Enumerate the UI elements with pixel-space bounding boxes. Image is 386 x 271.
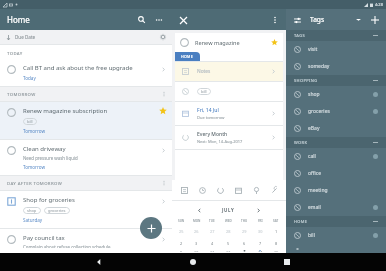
button[interactable]: bill [175, 82, 283, 101]
button[interactable]: DAY AFTER TOMORROW [0, 176, 172, 190]
button[interactable]: Close [177, 14, 189, 26]
button[interactable]: bill [286, 227, 386, 244]
staticText: Renew magazine subscription [195, 39, 271, 47]
button[interactable]: Add task [140, 217, 162, 239]
button[interactable]: Call BT and ask about the free upgrade [0, 59, 172, 86]
button[interactable]: HOME [175, 52, 200, 61]
button[interactable]: 30 [252, 226, 268, 236]
button[interactable]: More options [269, 14, 281, 26]
button[interactable]: 28 [220, 226, 236, 236]
button[interactable]: Home [186, 255, 200, 269]
button[interactable]: TOMORROW [0, 87, 172, 101]
button[interactable]: 7 [252, 238, 268, 248]
button[interactable]: Search [135, 13, 148, 26]
button[interactable]: bill [197, 88, 211, 95]
staticText: bill [308, 232, 373, 239]
button[interactable]: email [286, 199, 386, 216]
staticText: call [308, 153, 373, 160]
button[interactable]: meeting [286, 182, 386, 199]
button[interactable]: Next month [253, 205, 263, 215]
button[interactable]: More options [152, 13, 165, 26]
button[interactable]: Due Date [0, 30, 172, 44]
staticText: TODAY [7, 50, 23, 56]
button[interactable]: 26 [189, 226, 204, 236]
button[interactable]: groceries [286, 103, 386, 120]
button[interactable]: eBay [286, 120, 386, 137]
button[interactable]: 5 [220, 238, 236, 248]
staticText: Saturday [23, 217, 43, 223]
staticText: 6 [243, 241, 246, 246]
button[interactable]: 29 [236, 226, 252, 236]
button[interactable]: Recents [280, 255, 294, 269]
button[interactable]: shop [23, 207, 41, 214]
staticText: Call BT and ask about the free upgrade [23, 64, 133, 72]
staticText: 7 [259, 241, 262, 246]
button[interactable]: 9 [174, 250, 189, 252]
button[interactable]: 15 [268, 250, 284, 252]
button[interactable]: Dropdown [353, 14, 364, 25]
staticText: Shop for groceries [23, 196, 75, 204]
staticText: 8 [275, 241, 278, 246]
button[interactable]: 8 [268, 238, 284, 248]
staticText: Next: Mon, 14-Aug-2017 [197, 139, 243, 144]
staticText: DAY AFTER TOMORROW [7, 180, 63, 186]
button[interactable]: HOME [286, 216, 386, 227]
button[interactable]: Repeat [214, 184, 226, 196]
button[interactable]: Attach [268, 184, 280, 196]
staticText: JULY [222, 207, 235, 213]
button[interactable]: Previous month [194, 205, 204, 215]
staticText: Complain about refuse collection schedul… [23, 244, 111, 248]
button[interactable]: Fri, 14 Jul [175, 102, 283, 125]
button[interactable]: 27 [204, 226, 220, 236]
staticText: 9 [180, 250, 183, 252]
staticText: SUN [178, 219, 185, 223]
staticText: WED [225, 219, 232, 223]
staticText: 5 [227, 241, 230, 246]
button[interactable]: Notes [175, 62, 283, 81]
button[interactable]: groceries [44, 207, 70, 214]
button[interactable]: Add tag [369, 14, 381, 26]
button[interactable]: 12 [220, 250, 236, 252]
button[interactable]: 3 [189, 238, 204, 248]
button[interactable]: 14 [252, 250, 268, 252]
button[interactable]: 10 [189, 250, 204, 252]
button[interactable]: 11 [204, 250, 220, 252]
staticText: Every Month [197, 131, 228, 138]
button[interactable]: TAGS [286, 30, 386, 41]
button[interactable]: Renew magazine subscription [0, 102, 172, 139]
button[interactable]: Back [92, 255, 106, 269]
button[interactable]: Due date [232, 184, 244, 196]
button[interactable]: Clean driveway [0, 140, 172, 175]
staticText: bill [201, 89, 207, 94]
button[interactable]: Every Month [175, 126, 283, 149]
staticText: 12 [226, 250, 231, 252]
button[interactable]: 25 [174, 226, 189, 236]
button[interactable]: Shop for groceries [0, 191, 172, 228]
button[interactable]: 1 [268, 226, 284, 236]
button[interactable]: Filter [291, 14, 303, 26]
button[interactable]: 2 [174, 238, 189, 248]
button[interactable]: office [286, 165, 386, 182]
button[interactable]: match [286, 244, 386, 253]
button[interactable]: visit [286, 41, 386, 58]
button[interactable]: Renew magazine subscription [175, 33, 283, 52]
button[interactable]: Notes [178, 184, 190, 196]
button[interactable]: SHOPPING [286, 75, 386, 86]
button[interactable]: WORK [286, 137, 386, 148]
button[interactable]: shop [286, 86, 386, 103]
button[interactable]: 4 [204, 238, 220, 248]
button[interactable]: call [286, 148, 386, 165]
staticText: FRI [258, 219, 263, 223]
button[interactable]: Pay council tax [0, 229, 172, 253]
button[interactable]: Reminder [196, 184, 208, 196]
button[interactable]: someday [286, 58, 386, 75]
staticText: 10 [194, 250, 199, 252]
staticText: Today [23, 75, 36, 81]
staticText: Due tomorrow [197, 115, 225, 120]
button[interactable]: 13 [236, 250, 252, 252]
staticText: office [308, 170, 378, 177]
button[interactable]: Location [250, 184, 262, 196]
button[interactable]: bill [23, 118, 37, 125]
button[interactable]: 6 [236, 238, 252, 248]
staticText: Tomorrow [23, 164, 46, 170]
